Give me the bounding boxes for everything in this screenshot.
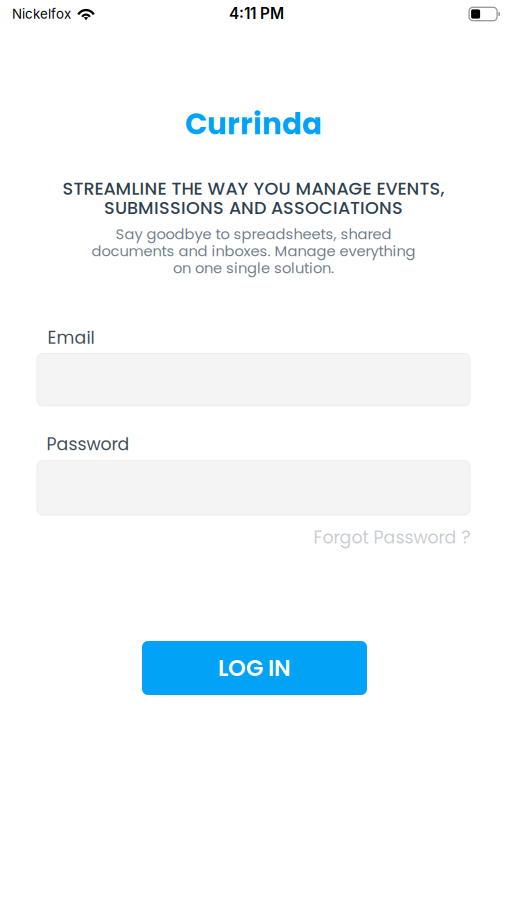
staticText: Email xyxy=(47,326,94,350)
staticText: 4:11 PM xyxy=(229,4,284,23)
staticText: Nickelfox xyxy=(12,6,71,22)
staticText: on one single solution. xyxy=(173,258,334,278)
staticText: Forgot Password ? xyxy=(313,525,470,550)
staticText: Currinda xyxy=(185,103,322,145)
button[interactable]: LOG IN xyxy=(142,641,367,695)
staticText: Say goodbye to spreadsheets, shared xyxy=(115,224,391,244)
staticText: LOG IN xyxy=(218,652,291,684)
staticText: SUBMISSIONS AND ASSOCIATIONS xyxy=(104,195,403,220)
staticText: documents and inboxes. Manage everything xyxy=(91,241,415,261)
staticText: STREAMLINE THE WAY YOU MANAGE EVENTS, xyxy=(62,176,444,201)
staticText: Password xyxy=(46,432,129,456)
button[interactable]: Forgot Password ? xyxy=(313,525,470,550)
